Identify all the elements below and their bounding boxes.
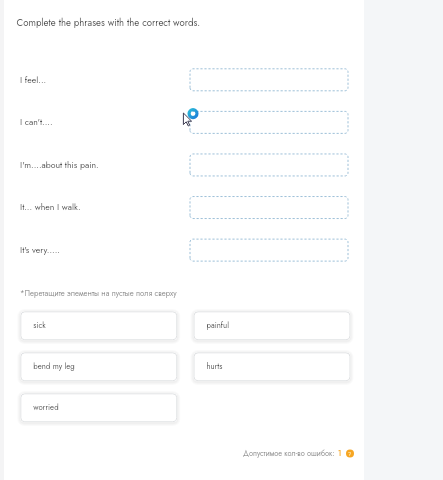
staticText: bend my leg [33, 361, 75, 372]
button[interactable]: worried [20, 393, 177, 422]
button[interactable] [189, 111, 348, 134]
button[interactable] [189, 68, 348, 91]
staticText: hurts [206, 361, 222, 372]
staticText: I'm....about this pain. [20, 159, 99, 172]
staticText: Complete the phrases with the correct wo… [17, 16, 201, 30]
button[interactable] [189, 196, 348, 219]
button[interactable]: painful [193, 311, 350, 340]
staticText: sick [33, 320, 46, 331]
staticText: 1 [338, 447, 342, 458]
other: Pointer [174, 103, 202, 131]
staticText: worried [33, 402, 59, 413]
staticText: *Перетащите элементы на пустые поля свер… [20, 287, 177, 298]
button[interactable] [189, 153, 348, 176]
staticText: It's very..... [20, 244, 60, 257]
staticText: I can't.... [20, 116, 53, 129]
staticText: Допустимое кол-во ошибок: [243, 447, 335, 458]
staticText: ? [348, 449, 352, 457]
staticText: painful [206, 320, 229, 331]
button[interactable]: bend my leg [20, 352, 177, 381]
staticText: I feel... [20, 73, 47, 86]
button[interactable] [189, 239, 348, 262]
button[interactable]: hurts [193, 352, 350, 381]
staticText: It... when I walk. [20, 201, 81, 214]
button[interactable]: sick [20, 311, 177, 340]
